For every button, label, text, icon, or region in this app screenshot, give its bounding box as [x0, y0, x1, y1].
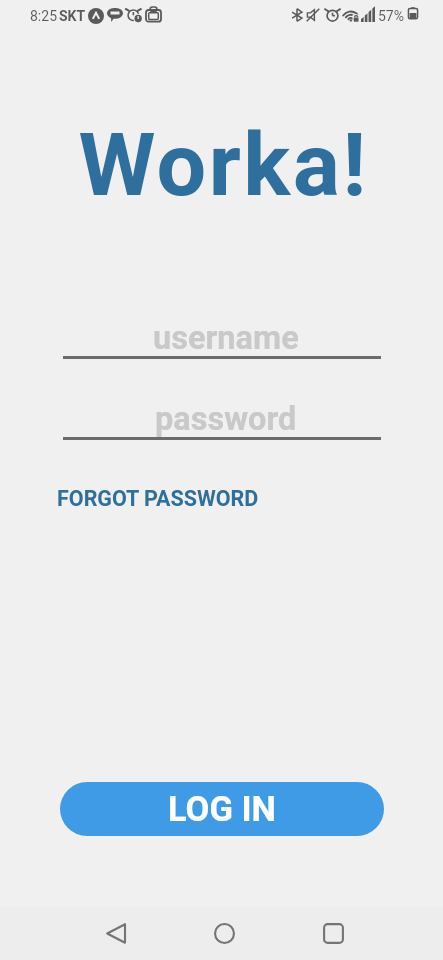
button[interactable]: Home [196, 912, 252, 955]
staticText: LOG IN [168, 789, 276, 829]
button[interactable]: FORGOT PASSWORD [53, 480, 263, 517]
staticText: FORGOT PASSWORD [57, 486, 259, 511]
button[interactable]: LOG IN [60, 782, 384, 836]
staticText: 8:25 [30, 8, 57, 24]
button[interactable]: Back [87, 912, 143, 955]
staticText: username [153, 319, 299, 357]
button[interactable]: Recent apps [305, 912, 361, 955]
button[interactable]: password [63, 395, 381, 440]
staticText: password [155, 400, 297, 438]
button[interactable]: username [63, 314, 381, 359]
staticText: Worka! [2, 113, 443, 216]
staticText: 57% [378, 8, 404, 24]
staticText: SKT [59, 8, 86, 24]
